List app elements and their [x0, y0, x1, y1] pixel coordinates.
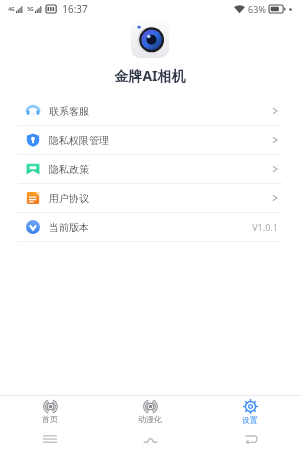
other: Home [143, 434, 158, 444]
other: Recents [43, 434, 57, 444]
button[interactable]: 动漫化 [100, 396, 200, 428]
button[interactable]: 设置 [200, 396, 300, 428]
button[interactable]: 隐私政策 [8, 155, 292, 183]
button[interactable]: 联系客服 [8, 97, 292, 125]
staticText: 4G [8, 6, 15, 13]
staticText: 联系客服 [49, 105, 89, 118]
other: Back [244, 434, 257, 444]
button[interactable]: 当前版本 [8, 213, 292, 241]
staticText: 首页 [42, 414, 58, 424]
button[interactable]: 隐私权限管理 [8, 126, 292, 154]
staticText: 63% [248, 3, 266, 15]
staticText: 16:37 [62, 2, 88, 16]
staticText: 用户协议 [49, 192, 89, 205]
staticText: 隐私政策 [49, 163, 89, 176]
staticText: 当前版本 [49, 221, 89, 234]
staticText: 5G [27, 6, 34, 13]
staticText: 设置 [242, 415, 258, 425]
staticText: 隐私权限管理 [49, 134, 109, 147]
staticText: 金牌AI相机 [114, 66, 186, 85]
button[interactable]: 首页 [0, 396, 100, 428]
staticText: V1.0.1 [252, 221, 278, 233]
button[interactable]: 用户协议 [8, 184, 292, 212]
staticText: 动漫化 [138, 414, 162, 424]
